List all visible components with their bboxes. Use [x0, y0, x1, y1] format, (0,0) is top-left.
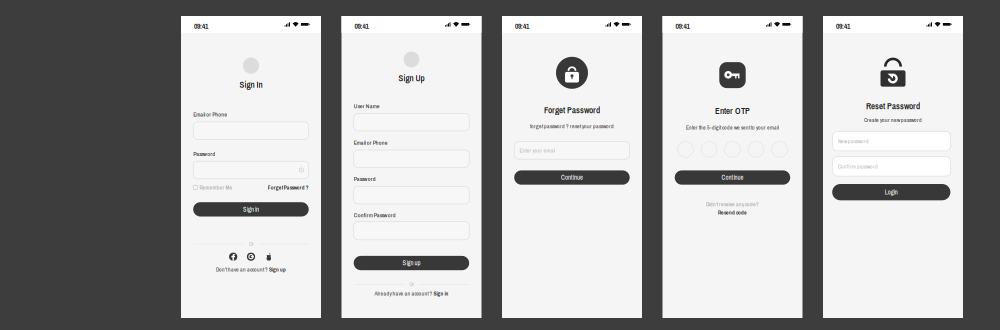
- button[interactable]: Already have an account ?: [341, 290, 481, 297]
- button[interactable]: Sign in with Google: [247, 253, 255, 261]
- staticText: Continue: [721, 173, 743, 182]
- staticText: Sign up: [268, 266, 286, 273]
- staticText: Remember Me: [200, 184, 233, 191]
- staticText: Sign in: [432, 290, 448, 297]
- staticText: Sign up: [402, 259, 420, 267]
- staticText: 09:41: [194, 21, 208, 31]
- staticText: Sign In: [239, 79, 262, 90]
- staticText: Create your new password: [864, 116, 922, 124]
- staticText: Don't have an account ?: [216, 266, 268, 273]
- staticText: Continue: [561, 173, 583, 182]
- button[interactable]: Sign in with Apple: [265, 252, 273, 261]
- staticText: Password: [193, 150, 215, 158]
- staticText: Enter your email: [519, 147, 555, 154]
- staticText: Confirm password: [838, 163, 878, 170]
- staticText: Or: [409, 281, 413, 288]
- staticText: Already have an account ?: [374, 290, 432, 297]
- staticText: Login: [885, 188, 898, 196]
- staticText: Sign Up: [398, 72, 424, 84]
- staticText: 09:41: [675, 21, 689, 31]
- staticText: forget password ? reset your password: [530, 122, 614, 130]
- staticText: Resend code: [718, 209, 747, 216]
- staticText: Password: [354, 175, 376, 183]
- staticText: User Name: [354, 102, 380, 110]
- button[interactable]: Sign in: [193, 202, 309, 216]
- staticText: Sign in: [243, 205, 259, 214]
- staticText: 09:41: [515, 21, 529, 31]
- button[interactable]: Forget Password ?: [268, 184, 309, 191]
- staticText: Email or Phone: [193, 110, 227, 118]
- staticText: Reset Password: [866, 100, 920, 112]
- button[interactable]: Continue: [675, 170, 790, 185]
- staticText: New password: [838, 137, 869, 145]
- button[interactable]: Sign in with Facebook: [229, 253, 237, 261]
- button[interactable]: Don't have an account ?: [181, 266, 321, 273]
- button[interactable]: Resend code: [662, 209, 802, 216]
- button[interactable]: Sign up: [354, 256, 469, 270]
- staticText: 09:41: [354, 21, 368, 31]
- staticText: Forget Password: [544, 104, 600, 116]
- staticText: Enter OTP: [715, 105, 750, 117]
- staticText: Email or Phone: [354, 138, 388, 147]
- staticText: 09:41: [836, 21, 850, 31]
- staticText: Enter the 5-digit code we sent to your e…: [686, 124, 779, 131]
- staticText: Didn't receive any code?: [706, 200, 759, 208]
- button[interactable]: Login: [832, 184, 950, 200]
- staticText: Forget Password ?: [268, 184, 309, 191]
- staticText: Confirm Password: [354, 211, 396, 219]
- staticText: Or: [249, 240, 253, 248]
- button[interactable]: Continue: [514, 170, 630, 185]
